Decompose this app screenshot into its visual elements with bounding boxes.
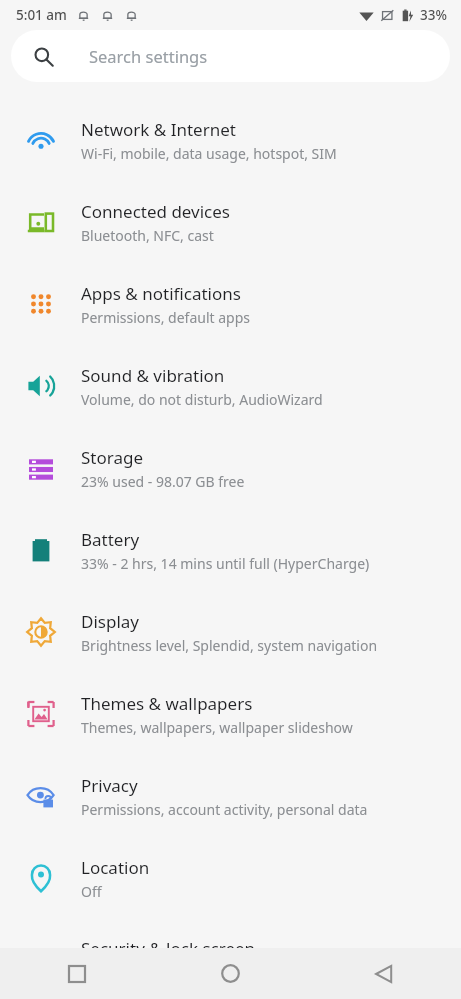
staticText: Privacy <box>81 774 138 797</box>
staticText: Storage <box>81 446 144 469</box>
button[interactable]: Search <box>11 30 450 82</box>
staticText: 5:01 am <box>16 6 67 24</box>
staticText: Connected devices <box>81 200 231 223</box>
staticText: 23% used - 98.07 GB free <box>81 472 245 491</box>
button[interactable]: Apps & notifications <box>0 263 461 345</box>
button[interactable]: Recent apps <box>0 948 153 999</box>
staticText: 33% - 2 hrs, 14 mins until full (HyperCh… <box>81 554 370 573</box>
staticText: Permissions, account activity, personal … <box>81 800 368 819</box>
button[interactable]: Themes & wallpapers <box>0 673 461 755</box>
staticText: Battery <box>81 528 140 551</box>
staticText: Security & lock screen <box>81 937 256 960</box>
staticText: Location <box>81 856 150 879</box>
button[interactable]: Display <box>0 591 461 673</box>
button[interactable]: Location <box>0 837 461 919</box>
staticText: Display <box>81 610 139 633</box>
button[interactable]: Home <box>153 948 307 999</box>
staticText: Bluetooth, NFC, cast <box>81 226 214 245</box>
button[interactable]: Privacy <box>0 755 461 837</box>
staticText: Themes, wallpapers, wallpaper slideshow <box>81 718 353 737</box>
staticText: Off <box>81 882 102 901</box>
staticText: Search settings <box>89 45 208 67</box>
button[interactable]: Connected devices <box>0 181 461 263</box>
staticText: Network & Internet <box>81 118 236 141</box>
staticText: Sound & vibration <box>81 364 225 387</box>
button[interactable]: Battery <box>0 509 461 591</box>
other: Search <box>33 46 54 67</box>
staticText: Apps & notifications <box>81 282 241 305</box>
button[interactable]: Network & Internet <box>0 99 461 181</box>
button[interactable]: Back <box>307 948 461 999</box>
staticText: 33% <box>420 6 447 24</box>
staticText: Volume, do not disturb, AudioWizard <box>81 390 323 409</box>
staticText: Wi-Fi, mobile, data usage, hotspot, SIM <box>81 144 337 163</box>
staticText: Themes & wallpapers <box>81 692 253 715</box>
button[interactable]: Security & lock screen <box>0 919 461 999</box>
staticText: Screen lock, fingerprint <box>81 963 234 982</box>
staticText: Permissions, default apps <box>81 308 251 327</box>
button[interactable]: Sound & vibration <box>0 345 461 427</box>
staticText: Brightness level, Splendid, system navig… <box>81 636 378 655</box>
button[interactable]: Storage <box>0 427 461 509</box>
